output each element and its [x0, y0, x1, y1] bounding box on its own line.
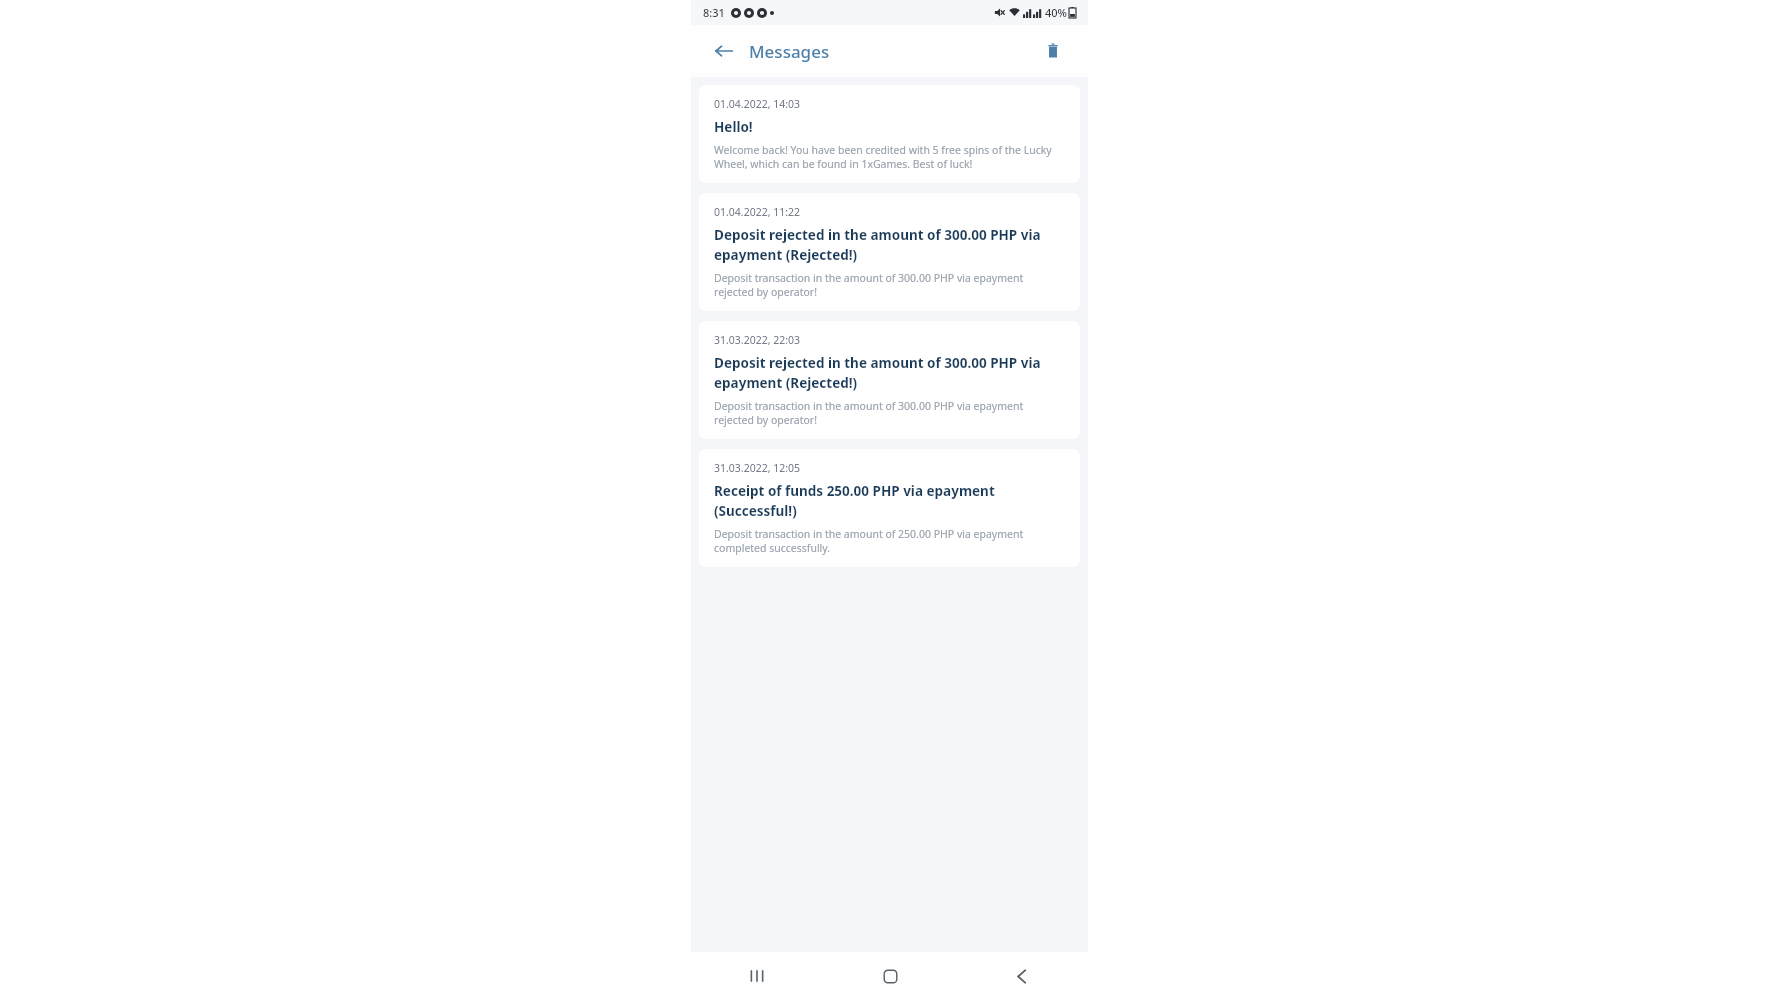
button[interactable]: 31.03.2022, 22:03 — [699, 321, 1080, 439]
staticText: Deposit rejected in the amount of 300.00… — [714, 354, 1065, 392]
staticText: 31.03.2022, 12:05 — [714, 461, 801, 475]
staticText: Deposit transaction in the amount of 300… — [714, 399, 1065, 427]
button[interactable]: 01.04.2022, 14:03 — [699, 85, 1080, 183]
button[interactable]: Back — [705, 32, 743, 70]
button[interactable]: 31.03.2022, 12:05 — [699, 449, 1080, 567]
staticText: Deposit rejected in the amount of 300.00… — [714, 226, 1065, 264]
staticText: 31.03.2022, 22:03 — [714, 333, 801, 347]
staticText: Hello! — [714, 118, 753, 136]
staticText: 01.04.2022, 14:03 — [714, 97, 801, 111]
button[interactable]: Home — [867, 953, 913, 999]
button[interactable]: Recent apps — [734, 953, 780, 999]
staticText: 01.04.2022, 11:22 — [714, 205, 801, 219]
staticText: 40% — [1045, 5, 1067, 20]
button[interactable]: Delete all messages — [1034, 32, 1072, 70]
staticText: Deposit transaction in the amount of 250… — [714, 527, 1065, 555]
staticText: 8:31 — [703, 5, 725, 20]
staticText: Messages — [749, 40, 830, 63]
button[interactable]: 01.04.2022, 11:22 — [699, 193, 1080, 311]
staticText: Deposit transaction in the amount of 300… — [714, 271, 1065, 299]
staticText: Receipt of funds 250.00 PHP via epayment… — [714, 482, 1065, 520]
button[interactable]: Back — [999, 953, 1045, 999]
staticText: Welcome back! You have been credited wit… — [714, 143, 1065, 171]
